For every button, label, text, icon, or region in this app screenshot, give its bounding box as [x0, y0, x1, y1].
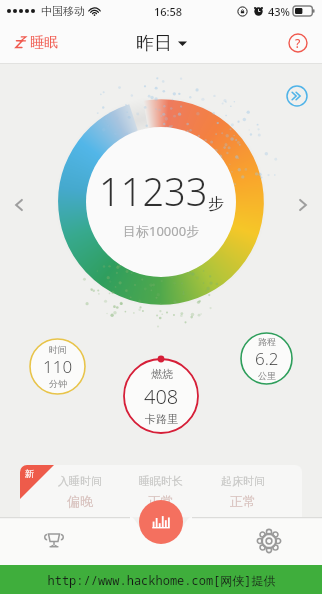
staticText: 408: [144, 383, 179, 410]
staticText: ?: [295, 35, 301, 51]
button[interactable]: 路程: [240, 332, 293, 385]
staticText: 起床时间: [221, 474, 265, 488]
staticText: 公里: [258, 370, 276, 381]
staticText: 正常: [230, 493, 256, 509]
staticText: 入睡时间: [58, 474, 102, 488]
button[interactable]: 入睡时间: [20, 465, 302, 517]
staticText: 分钟: [49, 378, 67, 389]
staticText: 路程: [258, 336, 276, 347]
button[interactable]: Settings: [215, 517, 322, 565]
staticText: 卡路里: [145, 412, 178, 426]
staticText: 11233: [99, 165, 208, 217]
button[interactable]: Help: [284, 29, 312, 57]
staticText: 时间: [49, 344, 67, 355]
staticText: 正常: [148, 493, 174, 509]
staticText: 偏晚: [67, 493, 93, 509]
button[interactable]: Statistics: [139, 500, 183, 544]
staticText: 睡眠: [30, 34, 58, 52]
button[interactable]: 昨日: [126, 27, 197, 60]
button[interactable]: 燃烧: [121, 356, 201, 436]
button[interactable]: 11233: [86, 127, 236, 277]
staticText: 步: [208, 194, 224, 214]
button[interactable]: 睡眠: [0, 28, 70, 58]
button[interactable]: Next day: [290, 192, 316, 218]
staticText: 43%: [268, 4, 290, 19]
staticText: 睡眠时长: [139, 474, 183, 488]
staticText: 燃烧: [151, 367, 173, 381]
button[interactable]: 时间: [29, 338, 86, 395]
staticText: 目标10000步: [123, 222, 200, 240]
staticText: 中国移动: [41, 4, 85, 18]
staticText: 昨日: [136, 32, 172, 55]
staticText: 110: [43, 355, 73, 378]
staticText: 6.2: [255, 347, 279, 370]
staticText: 新: [25, 468, 34, 479]
staticText: 16:58: [154, 4, 183, 19]
staticText: http://www.hackhome.com[网侠]提供: [47, 572, 276, 588]
button[interactable]: Next: [286, 85, 308, 107]
button[interactable]: Previous day: [6, 192, 32, 218]
button[interactable]: Achievements: [0, 517, 108, 565]
